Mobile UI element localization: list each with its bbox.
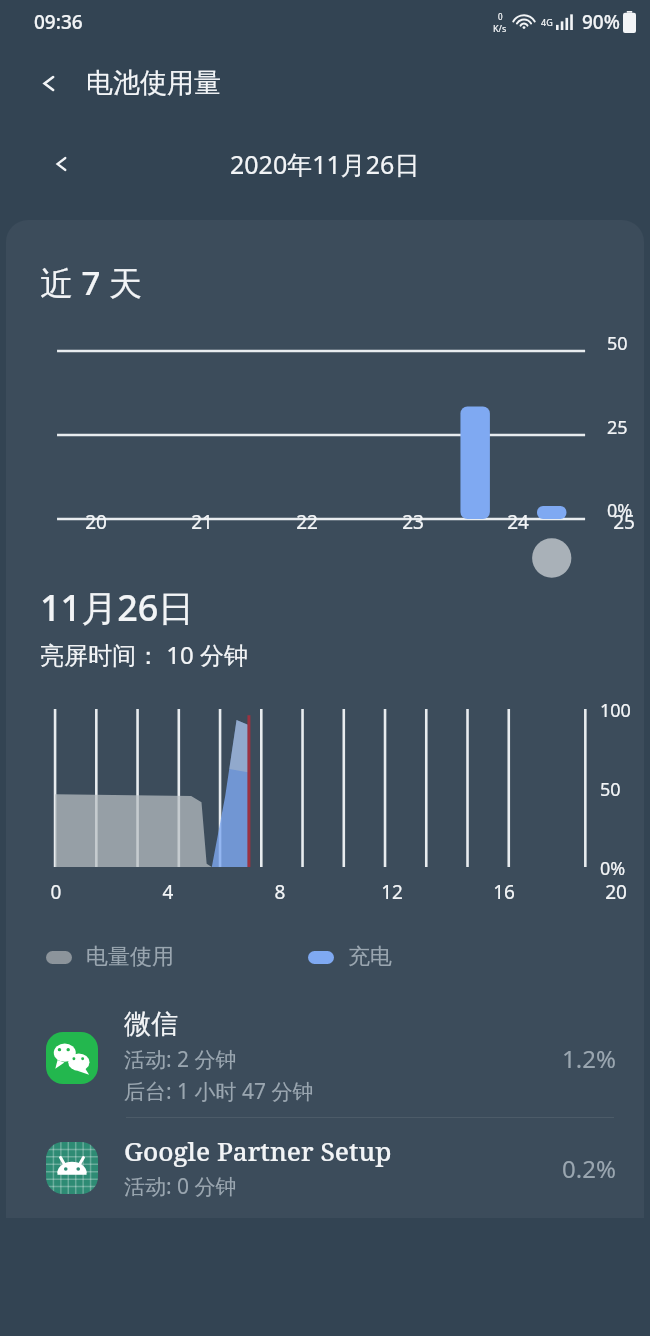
staticText: 20 <box>82 509 110 535</box>
staticText: 充电 <box>348 943 392 971</box>
staticText: 100 <box>600 698 631 723</box>
button[interactable]: Google Partner Setup <box>6 1118 644 1218</box>
staticText: 4G <box>541 16 553 28</box>
staticText: 电量使用 <box>86 943 174 971</box>
button[interactable]: Previous day <box>40 142 84 186</box>
staticText: 11月26日 <box>40 583 195 632</box>
staticText: 23 <box>399 509 427 535</box>
staticText: 1.2% <box>562 1042 616 1075</box>
staticText: 0 <box>42 879 70 905</box>
staticText: 24 <box>504 509 532 535</box>
staticText: 50 <box>600 777 621 802</box>
staticText: 0% <box>607 498 633 523</box>
staticText: 25 <box>607 415 628 440</box>
staticText: 8 <box>266 879 294 905</box>
button[interactable]: 100 <box>6 695 644 915</box>
staticText: 电池使用量 <box>86 66 221 100</box>
staticText: 16 <box>490 879 518 905</box>
staticText: 09:36 <box>34 9 83 35</box>
staticText: 21 <box>188 509 216 535</box>
button[interactable]: 微信 <box>6 999 644 1117</box>
staticText: 0% <box>600 856 626 881</box>
staticText: 2020年11月26日 <box>230 147 420 181</box>
staticText: 0.2% <box>562 1152 616 1185</box>
staticText: 微信 <box>124 1007 178 1041</box>
staticText: 活动: 0 分钟 <box>124 1172 237 1201</box>
staticText: 90% <box>582 9 620 35</box>
staticText: Google Partner Setup <box>124 1133 392 1168</box>
staticText: 亮屏时间： 10 分钟 <box>40 638 248 671</box>
staticText: 12 <box>378 879 406 905</box>
staticText: 4 <box>154 879 182 905</box>
staticText: 近 7 天 <box>40 260 143 305</box>
staticText: 20 <box>602 879 630 905</box>
staticText: 0 <box>498 11 503 22</box>
staticText: K/s <box>493 22 507 34</box>
staticText: 25 <box>610 509 638 535</box>
button[interactable]: 50 <box>6 331 644 539</box>
staticText: 50 <box>607 331 628 356</box>
staticText: 22 <box>293 509 321 535</box>
staticText: 活动: 2 分钟 <box>124 1045 237 1074</box>
button[interactable]: Back <box>26 60 72 106</box>
staticText: 后台: 1 小时 47 分钟 <box>124 1077 314 1106</box>
